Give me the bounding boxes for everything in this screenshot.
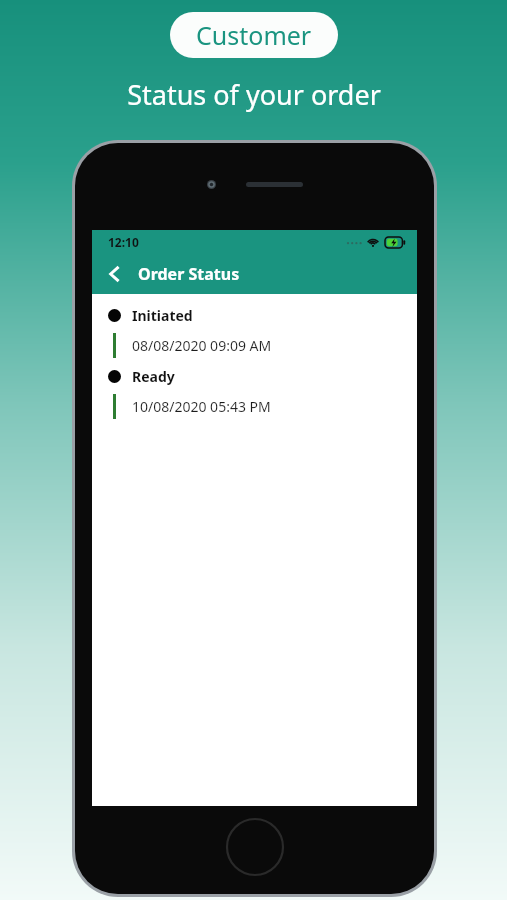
staticText: Customer	[196, 18, 312, 52]
button[interactable]: Back	[98, 257, 132, 291]
staticText: Status of your order	[127, 76, 381, 113]
button[interactable]: Home	[225, 817, 285, 877]
staticText: 12:10	[108, 234, 139, 250]
button[interactable]: Customer	[170, 12, 338, 58]
staticText: 10/08/2020 05:43 PM	[132, 397, 271, 416]
button[interactable]: Initiated	[92, 300, 417, 361]
staticText: Initiated	[132, 306, 193, 325]
staticText: Ready	[132, 367, 175, 386]
staticText: Order Status	[138, 263, 240, 285]
button[interactable]: Ready	[92, 361, 417, 422]
staticText: 08/08/2020 09:09 AM	[132, 336, 272, 355]
